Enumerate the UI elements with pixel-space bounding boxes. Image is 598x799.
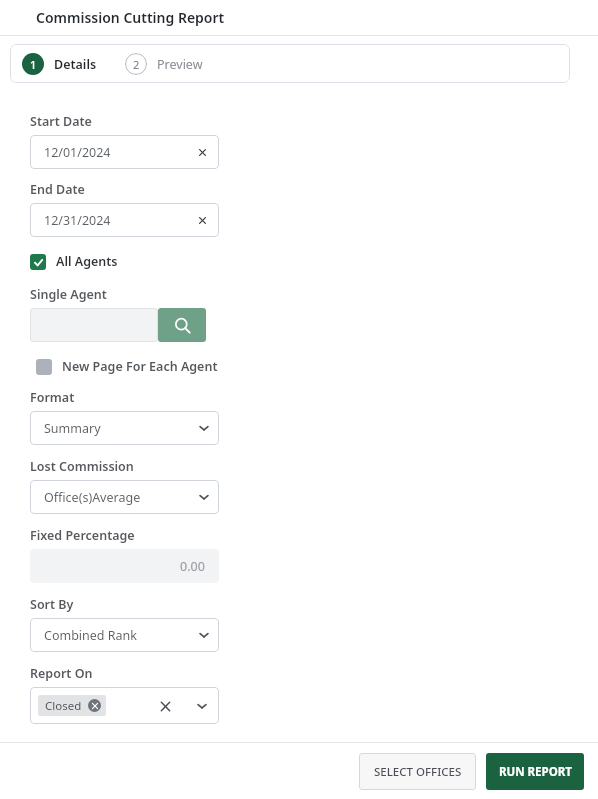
button[interactable]: Summary <box>30 411 219 445</box>
staticText: New Page For Each Agent <box>62 358 218 375</box>
staticText: All Agents <box>56 253 118 270</box>
staticText: Lost Commission <box>30 458 134 475</box>
button[interactable]: 0.00 <box>30 549 219 583</box>
button[interactable]: 12/31/2024 <box>30 203 219 237</box>
staticText: Sort By <box>30 596 74 613</box>
staticText: Fixed Percentage <box>30 527 135 544</box>
button[interactable]: Open options <box>193 697 211 715</box>
staticText: Report On <box>30 665 93 682</box>
staticText: 2 <box>133 57 140 72</box>
staticText: Format <box>30 389 75 406</box>
staticText: Single Agent <box>30 286 107 303</box>
button[interactable]: Clear start date <box>193 143 211 161</box>
staticText: 12/01/2024 <box>44 144 111 161</box>
staticText: Closed <box>45 698 82 714</box>
button[interactable]: 1 <box>22 53 97 75</box>
staticText: 0.00 <box>180 558 205 575</box>
button[interactable]: All Agents <box>30 253 118 270</box>
staticText: Commission Cutting Report <box>36 8 225 27</box>
button[interactable]: Closed <box>30 687 219 724</box>
button[interactable]: Clear all <box>155 696 175 716</box>
button[interactable]: Closed <box>38 695 106 716</box>
staticText: SELECT OFFICES <box>374 764 462 780</box>
button[interactable]: Clear end date <box>193 211 211 229</box>
staticText: Combined Rank <box>44 627 137 644</box>
staticText: 12/31/2024 <box>44 212 111 229</box>
staticText: Details <box>54 56 97 73</box>
button[interactable]: SELECT OFFICES <box>359 753 476 790</box>
staticText: RUN REPORT <box>499 764 572 780</box>
button[interactable]: Combined Rank <box>30 618 219 652</box>
staticText: Office(s)Average <box>44 489 141 506</box>
button[interactable]: RUN REPORT <box>486 753 584 790</box>
button[interactable]: 12/01/2024 <box>30 135 219 169</box>
button[interactable]: Office(s)Average <box>30 480 219 514</box>
button[interactable]: New Page For Each Agent <box>36 358 218 375</box>
button[interactable]: Search agent <box>158 308 206 342</box>
staticText: End Date <box>30 181 85 198</box>
staticText: Start Date <box>30 113 92 130</box>
button[interactable] <box>30 308 158 342</box>
staticText: Summary <box>44 420 101 437</box>
staticText: Preview <box>157 56 203 73</box>
button[interactable]: 2 <box>125 53 203 75</box>
staticText: 1 <box>30 57 37 72</box>
